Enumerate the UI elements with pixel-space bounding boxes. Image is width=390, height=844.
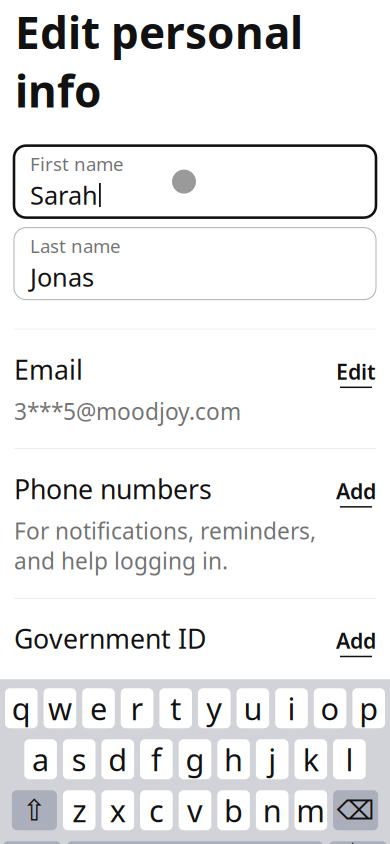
button[interactable]: First name — [14, 146, 376, 218]
staticText: Add — [336, 477, 376, 505]
button[interactable]: Delete — [333, 790, 378, 830]
staticText: p — [359, 688, 378, 729]
button[interactable]: Phone numbers — [14, 449, 376, 598]
staticText: Sarah — [30, 178, 98, 212]
button[interactable]: f — [140, 739, 173, 779]
button[interactable]: u — [237, 688, 269, 728]
staticText: n — [263, 790, 282, 831]
staticText: t — [170, 688, 181, 729]
staticText: l — [345, 739, 353, 780]
button[interactable]: g — [179, 739, 211, 779]
staticText: i — [287, 688, 295, 729]
button[interactable]: v — [179, 790, 211, 830]
staticText: 3***5@moodjoy.com — [14, 396, 241, 426]
staticText: Edit — [336, 357, 376, 385]
button[interactable]: x — [101, 790, 134, 830]
button[interactable]: m — [294, 790, 327, 830]
button[interactable]: l — [333, 739, 366, 779]
staticText: e — [90, 688, 107, 729]
staticText: Email — [14, 352, 83, 387]
staticText: Add — [336, 626, 376, 655]
staticText: Last name — [30, 233, 121, 258]
staticText: v — [187, 790, 203, 831]
staticText: z — [72, 790, 86, 831]
staticText: c — [149, 790, 164, 831]
staticText: Jonas — [30, 260, 94, 294]
button[interactable]: j — [256, 739, 288, 779]
staticText: r — [131, 688, 144, 729]
staticText: Edit personal info — [15, 3, 303, 120]
staticText: For notifications, reminders, and help l… — [14, 516, 316, 576]
staticText: b — [224, 790, 243, 831]
staticText: s — [72, 739, 87, 780]
staticText: return — [329, 835, 386, 844]
staticText: q — [12, 688, 31, 729]
button[interactable]: h — [217, 739, 250, 779]
staticText: h — [224, 739, 243, 780]
button[interactable]: a — [24, 739, 57, 779]
staticText: k — [303, 739, 319, 780]
staticText: First name — [30, 151, 124, 176]
staticText: g — [185, 739, 204, 780]
staticText: u — [243, 688, 262, 729]
staticText: Phone numbers — [14, 471, 212, 507]
button[interactable]: e — [82, 688, 115, 728]
button[interactable]: d — [101, 739, 134, 779]
button[interactable]: c — [140, 790, 173, 830]
button[interactable]: p — [352, 688, 385, 728]
button[interactable]: Last name — [14, 228, 376, 300]
staticText: ⌫ — [337, 795, 375, 825]
staticText: w — [48, 688, 72, 729]
staticText: f — [151, 739, 162, 780]
button[interactable]: s — [63, 739, 95, 779]
staticText: m — [296, 790, 325, 831]
staticText: ⇧ — [22, 794, 47, 827]
button[interactable]: q — [5, 688, 38, 728]
button[interactable]: n — [256, 790, 288, 830]
button[interactable]: 123 — [3, 841, 61, 844]
button[interactable]: r — [121, 688, 153, 728]
button[interactable]: t — [159, 688, 192, 728]
staticText: y — [206, 688, 222, 729]
button[interactable]: w — [44, 688, 76, 728]
button[interactable]: return — [329, 841, 387, 844]
staticText: d — [108, 739, 127, 780]
staticText: Government ID — [14, 621, 206, 656]
button[interactable]: space — [67, 841, 323, 844]
button[interactable]: Shift — [12, 790, 57, 830]
button[interactable]: o — [314, 688, 346, 728]
button[interactable]: i — [275, 688, 308, 728]
button[interactable]: b — [217, 790, 250, 830]
staticText: a — [32, 739, 49, 780]
button[interactable]: z — [63, 790, 95, 830]
staticText: o — [321, 688, 340, 729]
button[interactable]: k — [294, 739, 327, 779]
staticText: x — [110, 790, 126, 831]
button[interactable]: Email — [14, 330, 376, 448]
staticText: j — [268, 739, 276, 780]
button[interactable]: y — [198, 688, 231, 728]
button[interactable]: Government ID — [14, 599, 376, 679]
